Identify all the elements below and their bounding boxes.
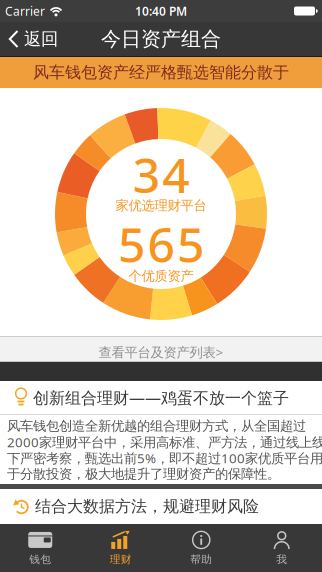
staticText: 我 — [276, 553, 287, 566]
staticText: 风车钱包创造全新优越的组合理财方式，从全国超过 — [7, 418, 306, 434]
staticText: 查看平台及资产列表> — [98, 343, 223, 361]
staticText: 创新组合理财——鸡蛋不放一个篮子 — [33, 387, 289, 408]
staticText: 2000家理财平台中，采用高标准、严方法，通过线上线 — [7, 433, 322, 451]
button[interactable]: 钱包 — [0, 524, 80, 572]
staticText: 565 — [118, 212, 204, 276]
button[interactable]: 理财 — [80, 524, 161, 572]
staticText: 家优选理财平台 — [115, 197, 206, 214]
staticText: 钱包 — [29, 553, 51, 566]
button[interactable]: 查看平台及资产列表> — [0, 336, 322, 362]
staticText: 结合大数据方法，规避理财风险 — [35, 497, 259, 516]
staticText: 10:40 PM — [135, 3, 187, 19]
staticText: 下严密考察，甄选出前5%，即不超过100家优质平台用 — [7, 449, 322, 467]
button[interactable]: 我 — [241, 524, 322, 572]
staticText: Carrier — [5, 3, 45, 19]
button[interactable]: 风车钱包资产经严格甄选智能分散于 — [0, 57, 322, 88]
staticText: 于分散投资，极大地提升了理财资产的保障性。 — [7, 466, 280, 482]
staticText: 返回 — [24, 28, 58, 50]
staticText: 34 — [133, 143, 189, 206]
staticText: 个优质资产 — [128, 268, 193, 284]
staticText: 风车钱包资产经严格甄选智能分散于 — [33, 63, 289, 82]
staticText: 帮助 — [190, 553, 212, 566]
button[interactable]: 返回 — [0, 22, 58, 56]
button[interactable]: 帮助 — [161, 524, 241, 572]
staticText: 今日资产组合 — [101, 27, 221, 51]
staticText: 理财 — [110, 553, 132, 566]
